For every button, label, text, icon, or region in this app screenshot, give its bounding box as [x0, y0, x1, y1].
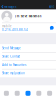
staticText: Edit — [49, 5, 54, 8]
button[interactable]: Store — [12, 91, 23, 96]
button[interactable]: Add to Favourites — [0, 61, 56, 69]
staticText: Add to Favourites — [2, 63, 26, 67]
staticText: I'm Steve Marxman — [15, 14, 42, 18]
staticText: Share Contact — [2, 55, 20, 58]
button[interactable]: Share Contact — [0, 52, 56, 60]
staticText: mobile — [2, 24, 12, 28]
staticText: Send Message — [2, 46, 21, 50]
button[interactable]: More — [44, 91, 55, 96]
button[interactable]: Edit — [49, 4, 56, 10]
button[interactable]: Messages — [23, 91, 33, 96]
staticText: 0-216-403-88-54 — [2, 28, 28, 32]
button[interactable]: Music — [33, 91, 44, 96]
button[interactable]: Photos — [1, 91, 12, 96]
button[interactable]: Send Message — [0, 44, 56, 52]
staticText: Messages — [4, 5, 16, 8]
button[interactable]: Messages — [0, 4, 16, 10]
staticText: Share my Location — [2, 71, 25, 75]
button[interactable]: Share my Location — [0, 69, 56, 77]
button[interactable]: Message — [50, 26, 54, 30]
